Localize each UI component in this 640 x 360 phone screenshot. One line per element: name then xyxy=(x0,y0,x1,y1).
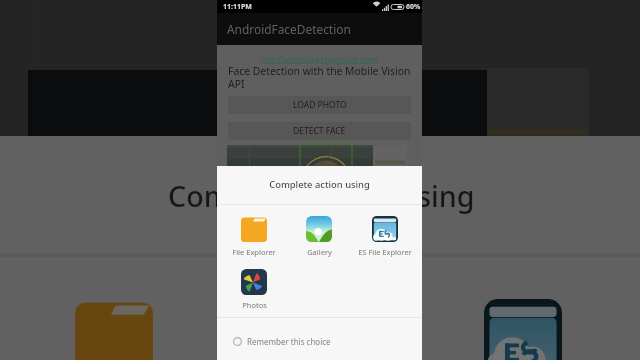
staticText: Complete action using xyxy=(168,176,475,215)
staticText: Gallery xyxy=(307,247,332,257)
staticText: LOAD PHOTO xyxy=(293,99,347,111)
other: Mobile signal xyxy=(382,4,389,11)
staticText: http://android-er.blogspot.com/ xyxy=(260,54,379,65)
button[interactable]: Remember this choice xyxy=(217,324,422,358)
button[interactable]: Gallery xyxy=(285,216,353,252)
button[interactable]: DETECT FACE xyxy=(228,122,411,140)
staticText: 60% xyxy=(406,2,421,12)
staticText: 11:11PM xyxy=(223,2,252,12)
button[interactable]: Photos xyxy=(220,269,288,305)
button[interactable]: File Explorer xyxy=(220,216,288,252)
staticText: Photos xyxy=(242,300,267,310)
staticText: Remember this choice xyxy=(247,336,331,347)
button[interactable]: LOAD PHOTO xyxy=(228,96,411,114)
staticText: Complete action using xyxy=(217,178,422,191)
other: Wi-Fi signal xyxy=(372,3,381,12)
other: Battery 60 percent xyxy=(390,3,405,11)
staticText: DETECT FACE xyxy=(293,125,346,137)
staticText: AndroidFaceDetection xyxy=(227,21,351,37)
button[interactable]: http://android-er.blogspot.com/ xyxy=(217,52,422,64)
staticText: File Explorer xyxy=(232,247,276,257)
button[interactable]: ES File Explorer xyxy=(351,216,419,252)
staticText: ES File Explorer xyxy=(358,247,412,257)
staticText: Face Detection with the Mobile Vision AP… xyxy=(228,64,412,91)
